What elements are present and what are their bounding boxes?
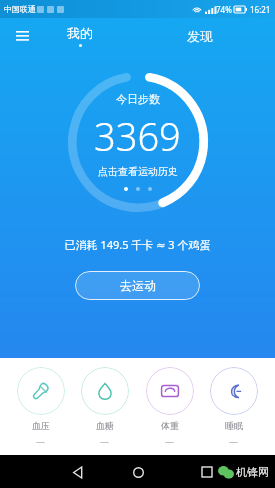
button[interactable]: 去运动 bbox=[75, 271, 200, 300]
staticText: 我的 bbox=[67, 25, 93, 41]
button[interactable]: 血压 bbox=[17, 367, 65, 447]
staticText: — bbox=[100, 435, 110, 447]
staticText: 点击查看运动历史 bbox=[98, 165, 178, 178]
button[interactable]: 发现 bbox=[187, 28, 213, 44]
staticText: 已消耗 149.5 千卡 ≈ 3 个鸡蛋 bbox=[0, 237, 275, 252]
button[interactable]: 体重 bbox=[146, 367, 194, 447]
staticText: 74% bbox=[216, 4, 232, 15]
staticText: 机锋网 bbox=[236, 465, 269, 479]
staticText: 中国联通 bbox=[4, 4, 36, 14]
staticText: 血压 bbox=[32, 420, 50, 431]
staticText: 血糖 bbox=[96, 420, 114, 431]
staticText: 今日步数 bbox=[116, 92, 160, 106]
staticText: 体重 bbox=[161, 420, 179, 431]
staticText: 16:21 bbox=[250, 4, 271, 15]
staticText: 睡眠 bbox=[225, 420, 243, 431]
button[interactable]: 睡眠 bbox=[210, 367, 258, 447]
staticText: — bbox=[165, 435, 175, 447]
button[interactable]: Menu bbox=[8, 22, 36, 50]
button[interactable]: 血糖 bbox=[81, 367, 129, 447]
button[interactable]: 我的 bbox=[67, 25, 93, 47]
button[interactable]: 今日步数 bbox=[94, 92, 181, 191]
button[interactable]: Recents bbox=[197, 462, 217, 482]
staticText: — bbox=[229, 435, 239, 447]
staticText: 3369 bbox=[94, 110, 181, 162]
button[interactable]: Back bbox=[63, 458, 91, 486]
staticText: — bbox=[36, 435, 46, 447]
staticText: 去运动 bbox=[120, 278, 156, 293]
button[interactable]: Home bbox=[124, 458, 152, 486]
staticText: 发现 bbox=[187, 28, 213, 44]
